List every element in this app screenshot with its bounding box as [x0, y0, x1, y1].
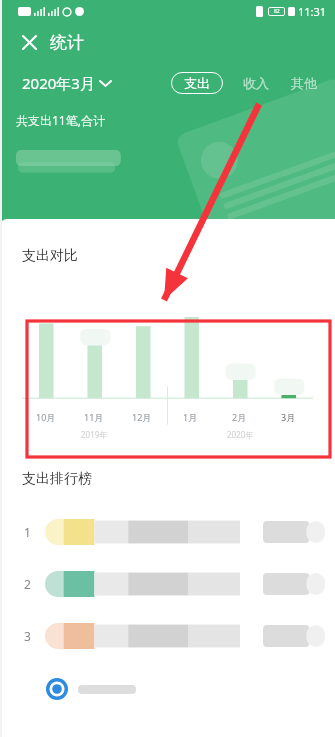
- staticText: 12月: [132, 411, 152, 423]
- staticText: 2020年3月: [22, 73, 95, 93]
- staticText: 1: [24, 524, 31, 540]
- staticText: 统计: [50, 32, 84, 53]
- button[interactable]: [0, 676, 335, 702]
- staticText: 3: [24, 628, 31, 644]
- staticText: 共支出11笔,合计: [16, 112, 105, 128]
- button[interactable]: 其他: [289, 73, 319, 93]
- button[interactable]: 收入: [241, 73, 271, 93]
- staticText: 11:31: [298, 4, 327, 19]
- staticText: 10月: [36, 411, 56, 423]
- staticText: 2月: [232, 411, 247, 423]
- staticText: 其他: [291, 75, 317, 91]
- button[interactable]: 2: [0, 558, 335, 610]
- button[interactable]: 3: [0, 610, 335, 662]
- staticText: 2: [24, 576, 31, 592]
- staticText: 3月: [281, 411, 296, 423]
- staticText: 收入: [243, 75, 269, 91]
- staticText: 2020年: [227, 429, 254, 440]
- staticText: 支出: [184, 75, 210, 91]
- staticText: 82: [274, 8, 280, 15]
- button[interactable]: 支出: [171, 72, 223, 94]
- staticText: 支出对比: [22, 247, 78, 265]
- staticText: 支出排行榜: [22, 470, 92, 488]
- staticText: 2019年: [81, 429, 108, 440]
- staticText: 1月: [183, 411, 198, 423]
- staticText: 11月: [84, 411, 104, 423]
- button[interactable]: Close: [14, 27, 44, 57]
- button[interactable]: 1: [0, 506, 335, 558]
- button[interactable]: 2020年3月: [22, 73, 111, 93]
